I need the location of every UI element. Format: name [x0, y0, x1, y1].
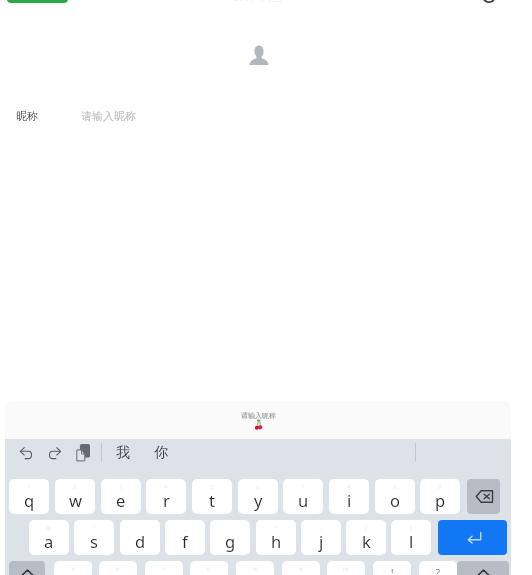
- staticText: r: [163, 489, 170, 511]
- button[interactable]: 昵称: [0, 104, 532, 128]
- button[interactable]: 0: [420, 479, 460, 514]
- staticText: ?: [436, 566, 440, 575]
- staticText: w: [69, 489, 82, 511]
- button[interactable]: c: [145, 561, 183, 575]
- staticText: p: [435, 489, 446, 511]
- staticText: 0: [438, 483, 442, 491]
- staticText: y: [254, 489, 263, 511]
- button[interactable]: z: [54, 561, 92, 575]
- staticText: e: [116, 489, 126, 511]
- staticText: 请输入昵称: [81, 109, 136, 123]
- button[interactable]: 2: [55, 479, 95, 514]
- staticText: (: [365, 524, 367, 532]
- staticText: 我: [116, 444, 130, 462]
- button[interactable]: x: [99, 561, 137, 575]
- button[interactable]: Symbols: [457, 561, 509, 575]
- staticText: x: [116, 565, 120, 573]
- button[interactable]: 9: [375, 479, 415, 514]
- staticText: 昵称: [16, 109, 38, 123]
- staticText: a: [44, 530, 54, 552]
- staticText: 5: [210, 483, 214, 491]
- staticText: :: [139, 524, 141, 532]
- staticText: 6: [256, 483, 260, 491]
- staticText: ;: [320, 524, 322, 532]
- button[interactable]: Clipboard: [71, 441, 95, 465]
- staticText: t: [209, 489, 215, 511]
- staticText: /: [93, 524, 96, 532]
- staticText: 4: [164, 483, 168, 491]
- staticText: 你: [154, 444, 168, 462]
- button[interactable]: m: [327, 561, 365, 575]
- staticText: i: [347, 489, 352, 511]
- button[interactable]: ): [391, 520, 431, 555]
- staticText: !: [391, 566, 394, 575]
- staticText: 3: [119, 483, 123, 491]
- staticText: j: [319, 530, 324, 552]
- staticText: k: [362, 530, 371, 552]
- staticText: f: [182, 530, 188, 552]
- staticText: h: [271, 530, 282, 552]
- button[interactable]: (: [346, 520, 386, 555]
- staticText: 请输入昵称: [241, 411, 276, 420]
- button[interactable]: ": [256, 520, 296, 555]
- button[interactable]: 4: [146, 479, 186, 514]
- staticText: c: [163, 565, 166, 573]
- button[interactable]: -: [210, 520, 250, 555]
- staticText: s: [90, 530, 98, 552]
- button[interactable]: 8: [329, 479, 369, 514]
- staticText: ": [275, 524, 278, 532]
- button[interactable]: !: [373, 561, 411, 575]
- button[interactable]: 5: [192, 479, 232, 514]
- button[interactable]: /: [74, 520, 114, 555]
- button[interactable]: v: [190, 561, 228, 575]
- staticText: 8: [347, 483, 351, 491]
- staticText: 9:41 周三: [233, 0, 283, 4]
- button[interactable]: Avatar: [248, 44, 270, 66]
- staticText: d: [135, 530, 146, 552]
- button[interactable]: n: [282, 561, 320, 575]
- button[interactable]: _: [165, 520, 205, 555]
- button[interactable]: 7: [283, 479, 323, 514]
- staticText: v: [207, 565, 211, 573]
- button[interactable]: Undo: [15, 441, 37, 463]
- staticText: @: [46, 524, 52, 532]
- button[interactable]: :: [120, 520, 160, 555]
- staticText: n: [299, 565, 303, 573]
- staticText: 2: [73, 483, 77, 491]
- staticText: g: [225, 530, 236, 552]
- staticText: o: [390, 489, 400, 511]
- button[interactable]: Shift: [9, 561, 45, 575]
- staticText: 1: [27, 483, 31, 491]
- button[interactable]: Enter: [438, 520, 507, 555]
- staticText: b: [253, 565, 257, 573]
- button[interactable]: Redo: [44, 441, 66, 463]
- staticText: ): [410, 524, 412, 532]
- staticText: 9: [393, 483, 397, 491]
- button[interactable]: b: [236, 561, 274, 575]
- button[interactable]: 我: [109, 441, 137, 465]
- button[interactable]: 1: [9, 479, 49, 514]
- button[interactable]: 你: [147, 441, 175, 465]
- button[interactable]: 6: [238, 479, 278, 514]
- staticText: u: [298, 489, 309, 511]
- staticText: q: [24, 489, 35, 511]
- staticText: m: [343, 565, 349, 573]
- staticText: 7: [301, 483, 305, 491]
- button[interactable]: @: [29, 520, 69, 555]
- staticText: z: [72, 565, 75, 573]
- button[interactable]: 3: [101, 479, 141, 514]
- button[interactable]: ;: [301, 520, 341, 555]
- staticText: l: [409, 530, 414, 552]
- button[interactable]: ?: [419, 561, 457, 575]
- button[interactable]: Backspace: [467, 479, 500, 514]
